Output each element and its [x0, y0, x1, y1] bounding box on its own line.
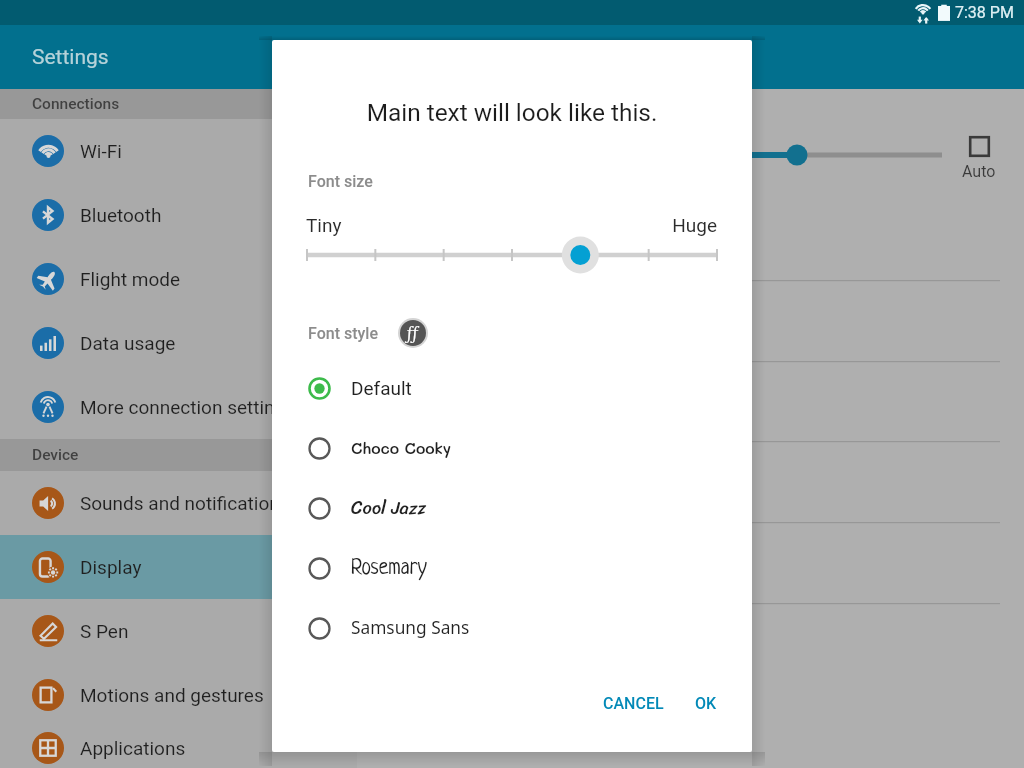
staticText: Tiny — [306, 214, 342, 236]
button[interactable]: Settings — [0, 25, 1024, 89]
staticText: OK — [695, 694, 717, 713]
staticText: Cool Jazz — [351, 492, 427, 524]
staticText: Choco Cooky — [351, 438, 452, 458]
staticText: Samsung Sans — [351, 616, 470, 640]
staticText: Settings — [32, 45, 109, 70]
staticText: Default — [351, 377, 412, 399]
staticText: Device — [32, 446, 79, 464]
staticText: ff — [407, 322, 419, 344]
staticText: More connection settings — [80, 396, 296, 418]
button[interactable]: Data usage — [0, 311, 357, 375]
button[interactable]: Choco Cooky — [272, 418, 752, 478]
staticText: Wi-Fi — [80, 140, 122, 162]
button[interactable]: S Pen — [0, 599, 357, 663]
staticText: Applications — [80, 737, 186, 759]
staticText: Font size — [308, 172, 373, 191]
button[interactable]: Default — [272, 358, 752, 418]
staticText: Bluetooth — [80, 204, 162, 226]
staticText: CANCEL — [603, 694, 664, 713]
button[interactable]: Applications — [0, 727, 357, 768]
button[interactable]: Auto brightness — [962, 136, 996, 181]
button[interactable]: Rosemary — [272, 538, 752, 598]
staticText: Auto — [962, 162, 996, 181]
staticText: Motions and gestures — [80, 684, 264, 706]
button[interactable]: Sounds and notifications — [0, 471, 357, 535]
button[interactable]: OK — [681, 681, 731, 725]
staticText: Connections — [32, 95, 120, 113]
button[interactable]: Font size slider — [272, 231, 752, 279]
button[interactable]: Cool Jazz — [272, 478, 752, 538]
staticText: Flight mode — [80, 268, 181, 290]
button[interactable]: Bluetooth — [0, 183, 357, 247]
button[interactable]: Motions and gestures — [0, 663, 357, 727]
staticText: Font style — [308, 324, 379, 343]
button[interactable]: Display — [0, 535, 357, 599]
button[interactable]: More connection settings — [0, 375, 357, 439]
staticText: Huge — [272, 214, 717, 236]
staticText: Data usage — [80, 332, 176, 354]
staticText: Sounds and notifications — [80, 492, 290, 514]
button[interactable]: Wi-Fi — [0, 119, 357, 183]
staticText: Display — [80, 556, 142, 578]
button[interactable]: Samsung Sans — [272, 598, 752, 658]
staticText: 7:38 PM — [955, 3, 1014, 22]
staticText: Main text will look like this. — [272, 98, 752, 127]
staticText: Rosemary — [351, 557, 427, 580]
button[interactable]: Download fonts — [398, 318, 428, 348]
staticText: S Pen — [80, 620, 129, 642]
button[interactable]: CANCEL — [589, 681, 678, 725]
button[interactable]: Flight mode — [0, 247, 357, 311]
